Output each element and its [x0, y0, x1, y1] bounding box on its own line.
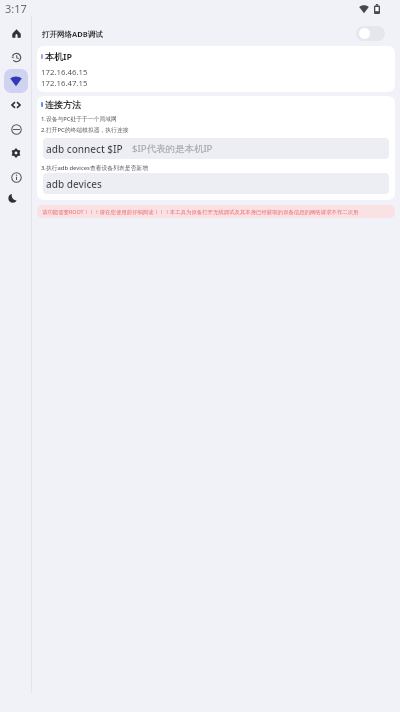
button[interactable]: History	[4, 45, 28, 69]
staticText: 3:17	[5, 1, 27, 16]
button[interactable]: Home	[4, 21, 28, 45]
button[interactable]: adb connect $IP	[43, 138, 389, 159]
staticText: adb devices	[46, 177, 102, 191]
staticText: 连接方法	[45, 99, 81, 110]
staticText: 打开网络ADB调试	[42, 29, 103, 39]
staticText: 3.执行adb devices查看设备列表是否新增	[41, 164, 148, 172]
button[interactable]: Toggle network ADB	[356, 26, 385, 41]
staticText: $IP代表的是本机IP	[132, 142, 213, 155]
staticText: adb connect $IP	[46, 142, 123, 156]
button[interactable]: Settings	[4, 141, 28, 165]
staticText: 172.16.46.15	[41, 67, 88, 78]
button[interactable]: Info	[4, 165, 28, 189]
staticText: 1.设备与PC处于于一个局域网	[41, 115, 117, 123]
button[interactable]: Network ADB	[4, 69, 28, 93]
button[interactable]: Dark mode	[4, 189, 28, 213]
staticText: 172.16.47.15	[41, 78, 88, 89]
staticText: 本机IP	[45, 50, 73, 62]
staticText: 2.打开PC的终端模拟器，执行连接	[41, 126, 129, 134]
button[interactable]: Code	[4, 93, 28, 117]
button[interactable]: adb devices	[43, 173, 389, 194]
staticText: 该功能需要ROOT！！！请在您使用前仔细阅读！！！本工具为设备打开无线调试及其本…	[42, 208, 359, 215]
button[interactable]: Block	[4, 117, 28, 141]
